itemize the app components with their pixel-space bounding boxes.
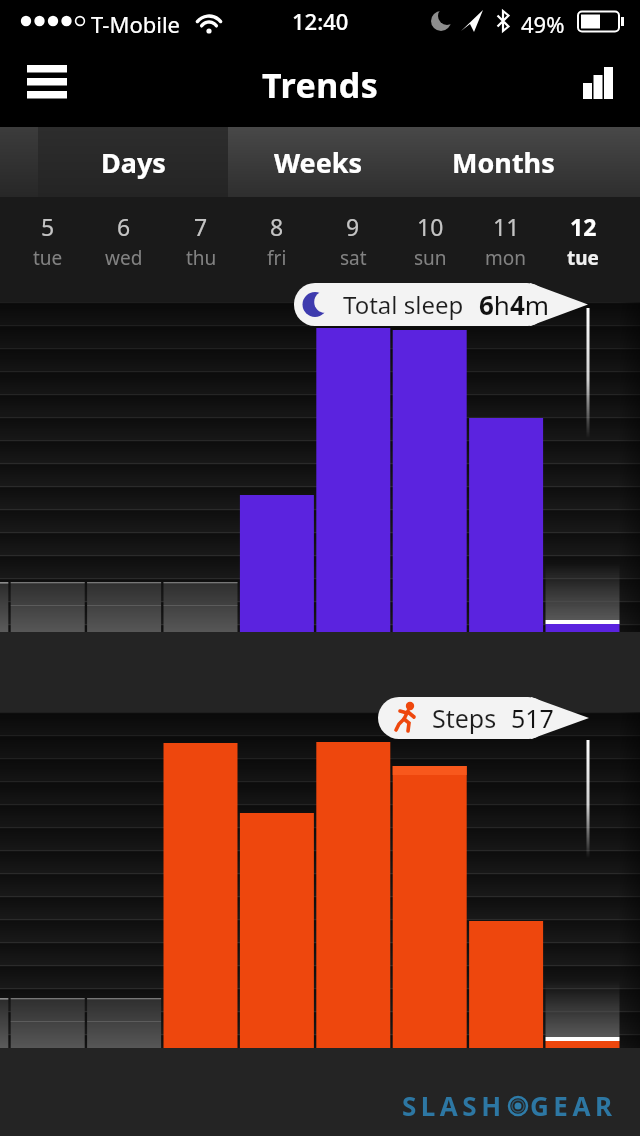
staticText: 6h4m	[479, 287, 550, 322]
button[interactable]: Weeks	[228, 127, 408, 197]
staticText: Total sleep	[343, 288, 464, 321]
staticText: fri	[267, 245, 287, 271]
button[interactable]: 11	[469, 211, 543, 271]
button[interactable]: Months	[408, 127, 598, 197]
staticText: Days	[101, 144, 166, 181]
button[interactable]: 10	[393, 211, 467, 271]
button[interactable]: Steps	[378, 697, 589, 739]
button[interactable]: 6	[87, 211, 161, 271]
staticText: T-Mobile	[91, 9, 180, 39]
staticText: Trends	[262, 62, 379, 108]
staticText: sun	[414, 245, 447, 271]
button[interactable]: Total sleep	[294, 283, 588, 326]
staticText: tue	[33, 245, 63, 271]
staticText: 517	[511, 701, 554, 735]
staticText: Weeks	[274, 144, 363, 181]
staticText: 8	[270, 211, 284, 242]
button[interactable]: Days	[38, 127, 228, 197]
staticText: 7	[194, 211, 208, 242]
staticText: 10	[417, 211, 444, 242]
button[interactable]	[583, 67, 613, 99]
staticText: GEAR	[530, 1088, 617, 1123]
staticText: Steps	[432, 701, 497, 735]
staticText: thu	[186, 245, 217, 271]
staticText: tue	[567, 245, 599, 271]
button[interactable]: 7	[164, 211, 238, 271]
staticText: 6	[117, 211, 131, 242]
staticText: 12:40	[292, 6, 349, 36]
button[interactable]: 5	[11, 211, 85, 271]
button[interactable]: 9	[316, 211, 390, 271]
staticText: 49%	[521, 9, 565, 39]
staticText: 5	[41, 211, 55, 242]
staticText: 11	[493, 211, 520, 242]
staticText: SLASH	[402, 1088, 506, 1123]
staticText: Months	[452, 144, 555, 181]
button[interactable]: 12	[546, 211, 620, 271]
staticText: sat	[340, 245, 367, 271]
button[interactable]	[27, 65, 67, 99]
staticText: wed	[105, 245, 143, 271]
staticText: mon	[485, 245, 527, 271]
button[interactable]: 8	[240, 211, 314, 271]
staticText: 9	[346, 211, 360, 242]
staticText: 12	[570, 211, 597, 242]
